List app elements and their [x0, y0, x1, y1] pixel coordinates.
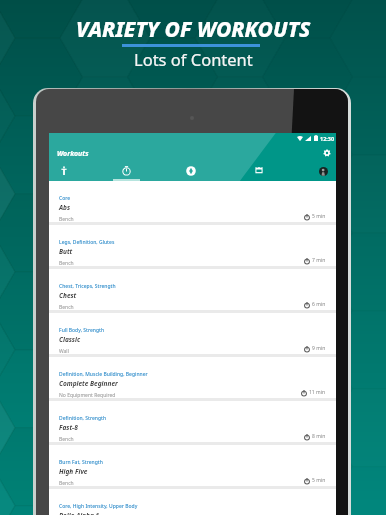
- staticText: Lots of Content: [134, 48, 253, 70]
- button[interactable]: Body: [50, 162, 78, 181]
- staticText: 12:30: [320, 135, 335, 142]
- other: Battery: [314, 135, 318, 141]
- staticText: Chest: [59, 291, 77, 300]
- staticText: 5 min: [312, 477, 326, 484]
- button[interactable]: Profile: [314, 162, 333, 181]
- staticText: Burn Fat, Strength: [59, 459, 103, 466]
- button[interactable]: Chest, Triceps, Strength: [49, 269, 336, 310]
- other: Wifi: [297, 136, 303, 141]
- button[interactable]: Core, High Intensity, Upper Body: [49, 489, 336, 515]
- button[interactable]: Legs, Definition, Glutes: [49, 225, 336, 266]
- staticText: Full Body, Strength: [59, 327, 105, 334]
- staticText: Legs, Definition, Glutes: [59, 239, 115, 246]
- staticText: Definition, Muscle Building, Beginner: [59, 371, 148, 378]
- staticText: Butt: [59, 247, 73, 256]
- staticText: Bench: [59, 480, 74, 487]
- staticText: VARIETY OF WORKOUTS: [76, 15, 311, 44]
- button[interactable]: Core: [49, 181, 336, 222]
- staticText: Fast-8: [59, 423, 78, 432]
- button[interactable]: Explore: [177, 162, 205, 181]
- staticText: Bench: [59, 436, 74, 443]
- staticText: Core: [59, 195, 71, 202]
- button[interactable]: Timer: [112, 162, 140, 181]
- other: Signal: [305, 136, 311, 141]
- staticText: Wall: [59, 348, 69, 355]
- staticText: No Equipment Required: [59, 392, 116, 399]
- staticText: Abs: [59, 203, 71, 212]
- staticText: Definition, Strength: [59, 415, 107, 422]
- button[interactable]: Calendar: [245, 162, 273, 181]
- staticText: Bench: [59, 216, 74, 223]
- staticText: Chest, Triceps, Strength: [59, 283, 116, 290]
- staticText: Complete Beginner: [59, 379, 118, 388]
- staticText: Core, High Intensity, Upper Body: [59, 503, 138, 510]
- staticText: Pollo Alpha 1: [59, 511, 100, 515]
- staticText: 7 min: [312, 257, 326, 264]
- staticText: Classic: [59, 335, 81, 344]
- staticText: 5 min: [312, 213, 326, 220]
- staticText: Bench: [59, 260, 74, 267]
- staticText: Bench: [59, 304, 74, 311]
- button[interactable]: Definition, Strength: [49, 401, 336, 442]
- button[interactable]: Full Body, Strength: [49, 313, 336, 354]
- staticText: 6 min: [312, 301, 326, 308]
- staticText: High Five: [59, 467, 88, 476]
- button[interactable]: Definition, Muscle Building, Beginner: [49, 357, 336, 398]
- staticText: 8 min: [312, 433, 326, 440]
- staticText: 11 min: [309, 389, 326, 396]
- staticText: 9 min: [312, 345, 326, 352]
- button[interactable]: Burn Fat, Strength: [49, 445, 336, 486]
- staticText: Workouts: [57, 149, 89, 159]
- button[interactable]: Settings: [317, 143, 336, 162]
